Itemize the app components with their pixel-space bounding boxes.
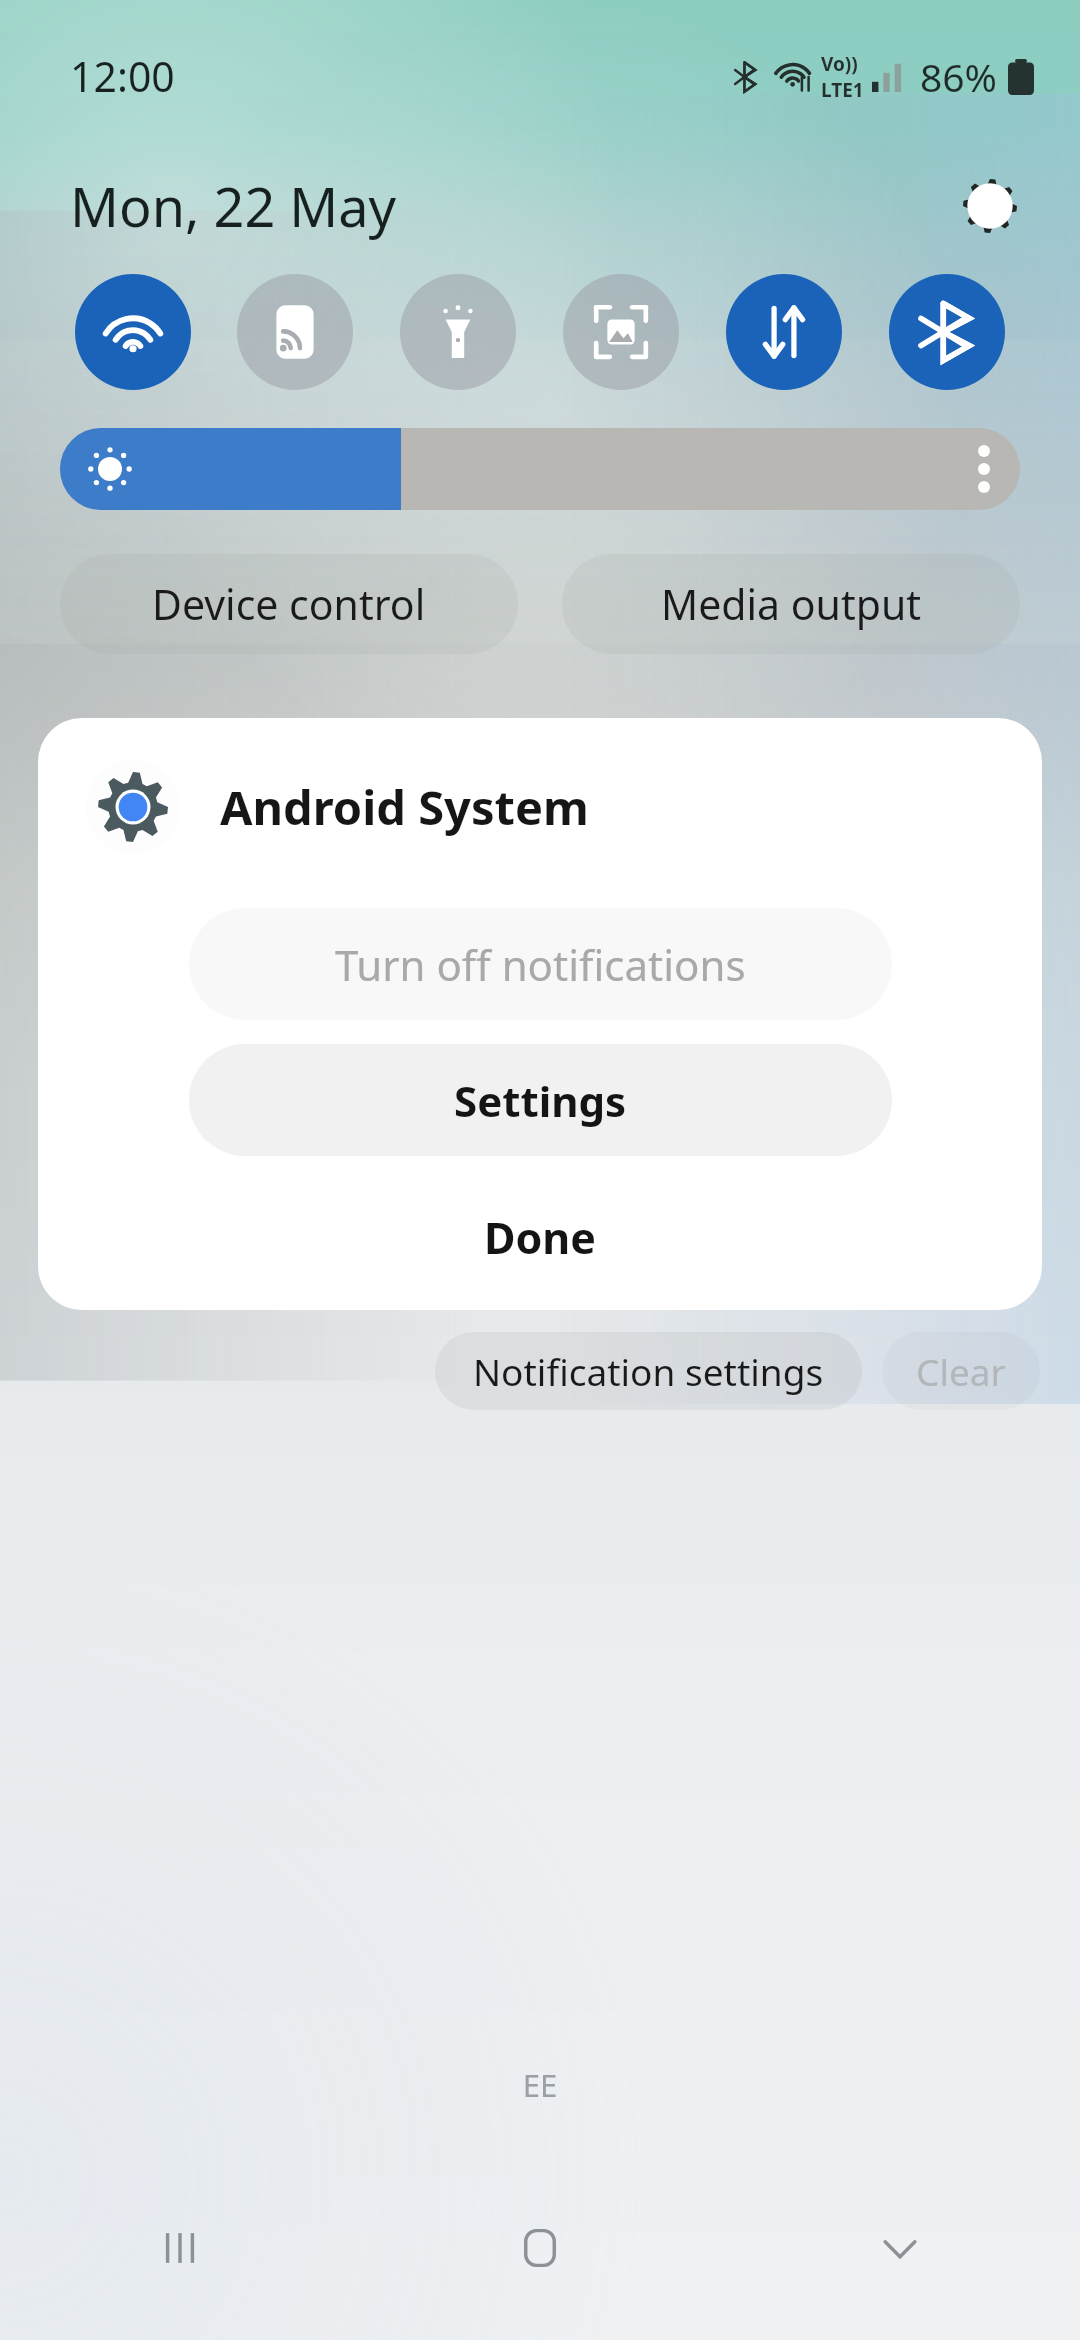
staticText: Android System [220, 775, 589, 839]
button[interactable]: Collapse [720, 2188, 1080, 2308]
button[interactable]: Smart View [237, 274, 353, 390]
staticText: Turn off notifications [335, 936, 746, 993]
staticText: LTE1 [821, 77, 864, 103]
staticText: Vo)) [821, 51, 858, 77]
button[interactable]: Done [38, 1190, 1042, 1284]
button[interactable]: Screenshot [563, 274, 679, 390]
button[interactable]: Clear [882, 1332, 1040, 1410]
staticText: Device control [152, 576, 426, 632]
button[interactable]: Mobile data [726, 274, 842, 390]
staticText: Notification settings [473, 1346, 824, 1396]
staticText: EE [0, 2064, 1080, 2106]
button[interactable]: Flashlight [400, 274, 516, 390]
button[interactable]: Turn off notifications [189, 908, 892, 1020]
button[interactable]: Wi-Fi [75, 274, 191, 390]
staticText: Mon, 22 May [70, 169, 397, 243]
button[interactable]: Settings [189, 1044, 892, 1156]
staticText: Settings [454, 1072, 627, 1129]
button[interactable]: Recents [0, 2188, 360, 2308]
staticText: Media output [661, 576, 922, 632]
button[interactable]: Brightness [60, 428, 1020, 510]
button[interactable]: Notification settings [435, 1332, 862, 1410]
staticText: 86% [920, 50, 998, 103]
staticText: Clear [916, 1346, 1006, 1396]
button[interactable]: Device control [60, 554, 518, 654]
button[interactable]: Settings [948, 164, 1032, 248]
button[interactable]: Bluetooth [889, 274, 1005, 390]
button[interactable]: Home [360, 2188, 720, 2308]
button[interactable]: Media output [562, 554, 1020, 654]
staticText: 12:00 [70, 48, 175, 104]
staticText: Done [484, 1208, 596, 1267]
